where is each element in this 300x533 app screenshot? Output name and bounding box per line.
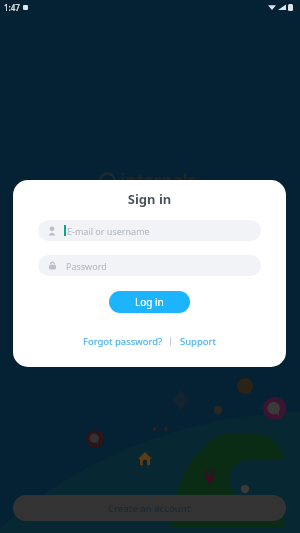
staticText: Support: [180, 335, 216, 348]
staticText: Create an account: [108, 502, 191, 515]
staticText: Log in: [135, 295, 164, 309]
button[interactable]: Create an account: [13, 495, 286, 521]
staticText: internals: [120, 169, 197, 192]
staticText: E-mail or username: [67, 225, 150, 237]
button[interactable]: Log in: [109, 291, 190, 313]
staticText: Sign in: [13, 190, 286, 208]
staticText: Forgot password?: [83, 335, 163, 348]
staticText: Password: [66, 260, 107, 272]
button[interactable]: E-mail or username: [38, 220, 261, 241]
button[interactable]: Password: [38, 255, 261, 276]
staticText: 1:47: [4, 2, 20, 13]
button[interactable]: Support: [177, 333, 219, 350]
button[interactable]: Forgot password?: [80, 333, 166, 350]
